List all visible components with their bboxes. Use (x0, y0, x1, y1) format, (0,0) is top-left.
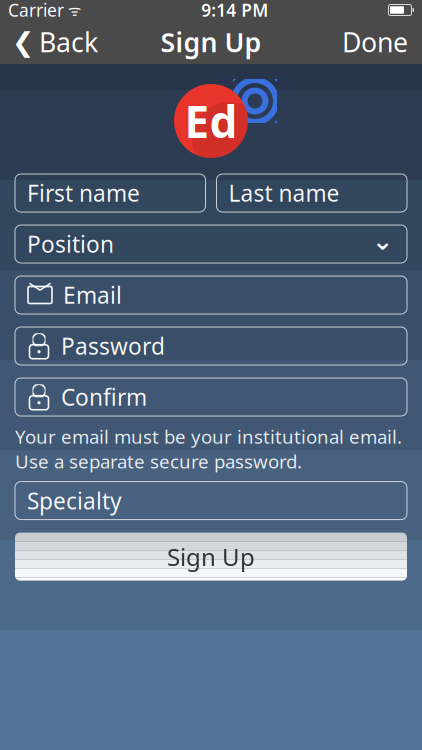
staticText: Password (61, 331, 165, 361)
button[interactable]: ❮ (0, 20, 110, 64)
button[interactable]: Password (15, 327, 407, 365)
button[interactable]: Done (328, 20, 422, 64)
staticText: Last name (228, 178, 339, 208)
button[interactable]: Email (15, 276, 407, 314)
staticText: 9:14 PM (201, 0, 268, 21)
button[interactable]: Position (15, 225, 407, 263)
staticText: ⌄ (372, 227, 393, 255)
button[interactable]: Specialty (15, 482, 407, 520)
staticText: Ed (184, 92, 237, 150)
staticText: Back (39, 24, 98, 60)
staticText: ❮ (12, 27, 34, 57)
button[interactable]: Confirm (15, 378, 407, 416)
staticText: Done (342, 24, 408, 60)
staticText: Carrier (8, 0, 64, 21)
staticText: Your email must be your institutional em… (15, 424, 402, 474)
staticText: Sign Up (167, 541, 255, 572)
staticText: Email (63, 280, 122, 310)
staticText: Confirm (61, 382, 147, 412)
button[interactable]: First name (15, 174, 205, 212)
button[interactable]: Last name (216, 174, 407, 212)
staticText: First name (27, 178, 140, 208)
staticText: Specialty (27, 485, 122, 516)
staticText: Position (27, 229, 114, 259)
button[interactable]: Sign Up (15, 533, 407, 581)
staticText: ᯤ (64, 0, 81, 20)
staticText: Sign Up (160, 24, 261, 60)
